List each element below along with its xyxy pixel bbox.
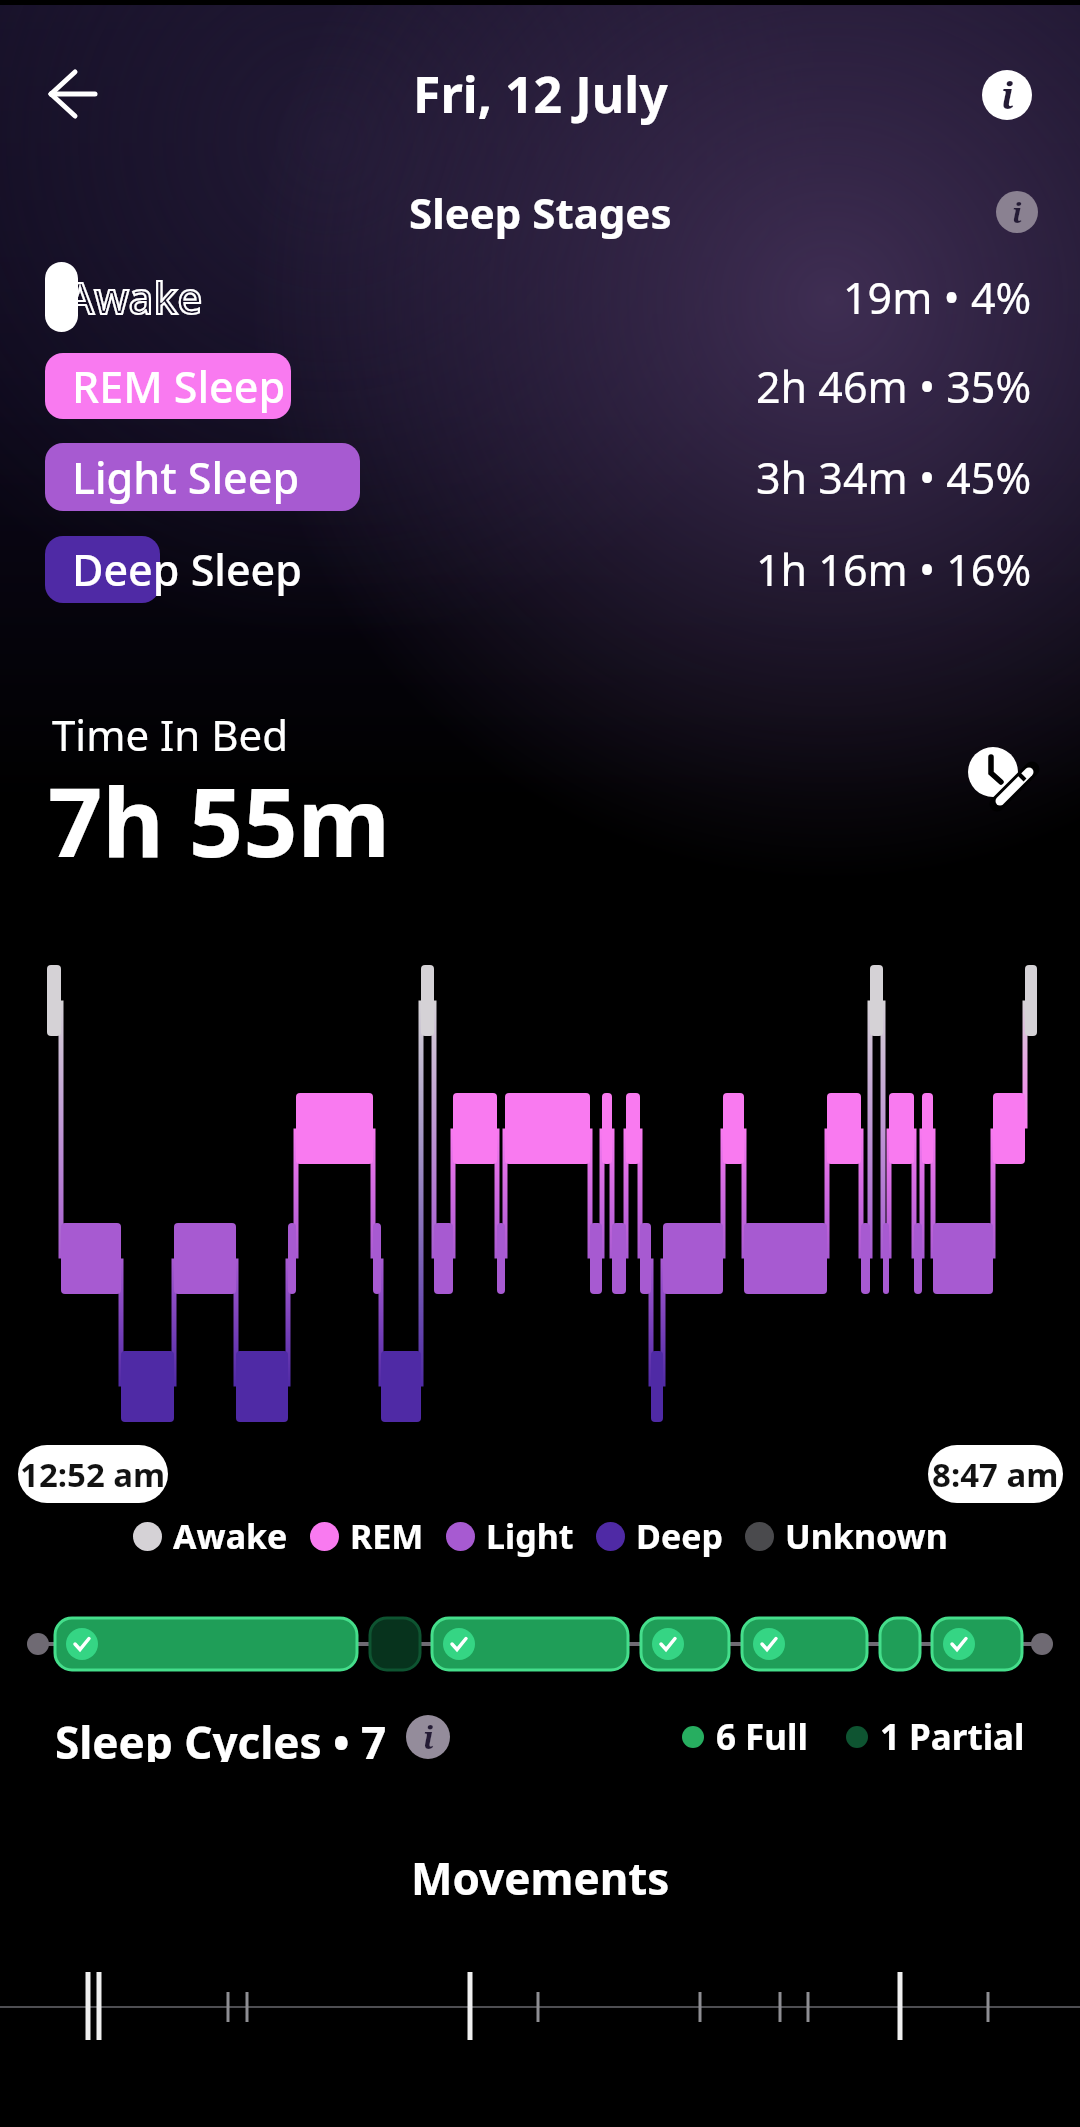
staticText: 19m • 4% [843, 268, 1032, 327]
staticText: REM Sleep [72, 357, 286, 416]
staticText: Light [486, 1513, 574, 1559]
staticText: Deep [636, 1513, 723, 1559]
staticText: Light Sleep [72, 448, 300, 507]
staticText: 2h 46m • 35% [756, 357, 1032, 416]
button[interactable] [44, 66, 104, 126]
button[interactable]: i [406, 1715, 450, 1759]
staticText: REM [350, 1513, 424, 1559]
button[interactable] [45, 443, 360, 511]
staticText: Movements [411, 1848, 670, 1902]
staticText: 8:47 am [932, 1452, 1059, 1497]
button[interactable]: i [982, 70, 1032, 120]
button[interactable]: 12:52 am [18, 1445, 168, 1503]
staticText: 3h 34m • 45% [756, 448, 1032, 507]
staticText: 1h 16m • 16% [756, 540, 1032, 599]
staticText: 1 Partial [880, 1713, 1025, 1761]
staticText: Deep Sleep [72, 540, 302, 599]
staticText: Fri, 12 July [413, 60, 668, 126]
button[interactable] [45, 262, 78, 332]
button[interactable] [45, 536, 160, 603]
staticText: 12:52 am [20, 1452, 166, 1497]
button[interactable] [960, 740, 1040, 820]
staticText: i [1012, 193, 1022, 231]
button[interactable]: 8:47 am [928, 1445, 1063, 1503]
staticText: Awake [66, 268, 203, 327]
staticText: 7h 55m [48, 755, 391, 870]
staticText: Awake [173, 1513, 288, 1559]
button[interactable] [45, 353, 291, 419]
staticText: Sleep Stages [409, 184, 672, 240]
staticText: 6 Full [716, 1713, 808, 1761]
button[interactable]: i [996, 191, 1038, 233]
staticText: Time In Bed [52, 706, 288, 763]
staticText: Unknown [785, 1513, 948, 1559]
staticText: i [1001, 71, 1014, 120]
staticText: Sleep Cycles • 7 [55, 1712, 387, 1762]
staticText: i [423, 1717, 434, 1758]
